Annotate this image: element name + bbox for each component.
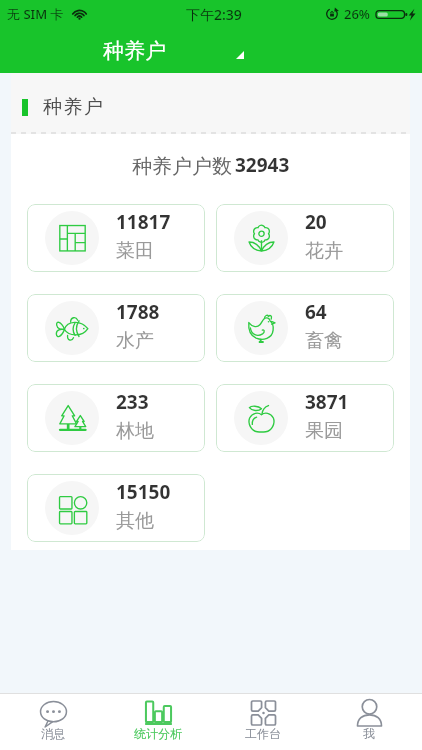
staticText: 我 — [363, 726, 375, 741]
staticText: 11817 — [116, 209, 171, 235]
staticText: 20 — [305, 209, 327, 235]
staticText: 种养户 — [43, 95, 105, 119]
button[interactable]: 1788 — [27, 294, 205, 362]
staticText: 消息 — [41, 726, 65, 741]
staticText: 其他 — [116, 509, 154, 533]
staticText: 15150 — [116, 479, 171, 505]
staticText: 水产 — [116, 329, 154, 353]
staticText: 花卉 — [305, 239, 343, 263]
staticText: 工作台 — [245, 726, 281, 741]
button[interactable]: 我 — [316, 694, 422, 750]
staticText: 林地 — [116, 419, 154, 443]
staticText: 32943 — [235, 152, 290, 178]
staticText: 64 — [305, 299, 327, 325]
button[interactable]: 11817 — [27, 204, 205, 272]
staticText: 无 SIM 卡 — [7, 5, 64, 23]
staticText: 统计分析 — [134, 726, 182, 741]
button[interactable]: 64 — [216, 294, 394, 362]
staticText: 233 — [116, 389, 149, 415]
staticText: 种养户户数 — [132, 154, 232, 179]
button[interactable]: 20 — [216, 204, 394, 272]
button[interactable]: 种养户 — [0, 28, 422, 73]
staticText: 种养户 — [103, 38, 166, 64]
staticText: 菜田 — [116, 239, 154, 263]
button[interactable]: 3871 — [216, 384, 394, 452]
staticText: 畜禽 — [305, 329, 343, 353]
staticText: 3871 — [305, 389, 349, 415]
button[interactable]: 工作台 — [210, 694, 316, 750]
staticText: 下午2:39 — [186, 5, 242, 24]
staticText: 26% — [344, 5, 370, 23]
button[interactable]: 233 — [27, 384, 205, 452]
staticText: 果园 — [305, 419, 343, 443]
button[interactable]: 统计分析 — [105, 694, 210, 750]
staticText: 1788 — [116, 299, 160, 325]
button[interactable]: 15150 — [27, 474, 205, 542]
button[interactable]: 消息 — [0, 694, 105, 750]
